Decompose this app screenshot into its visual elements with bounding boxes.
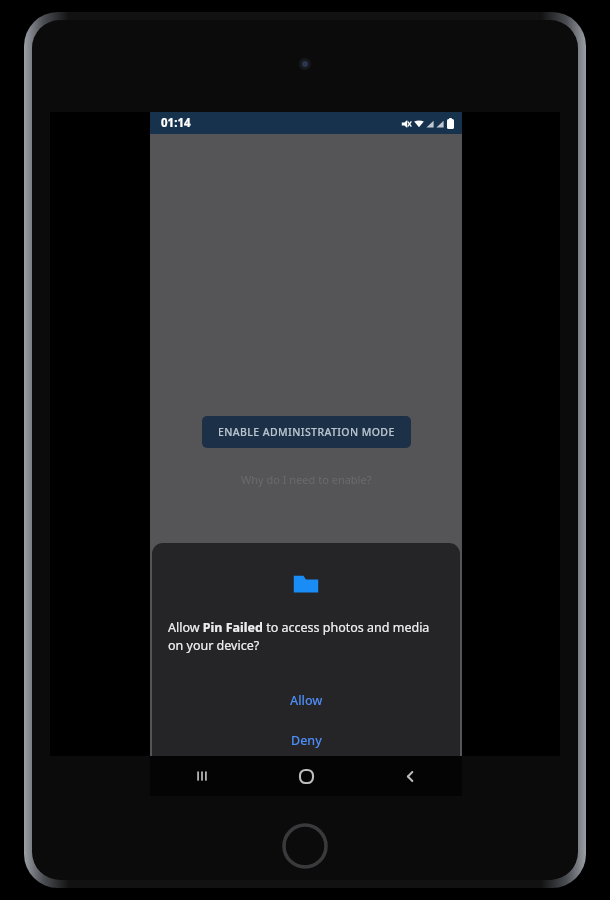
button[interactable]: Recent apps bbox=[150, 756, 254, 796]
staticText: Allow Pin Failed to access photos and me… bbox=[168, 619, 444, 654]
staticText: Why do I need to enable? bbox=[241, 472, 372, 487]
button[interactable]: Back bbox=[358, 756, 462, 796]
staticText: Allow bbox=[290, 692, 323, 709]
staticText: Deny bbox=[291, 732, 322, 749]
button[interactable]: Why do I need to enable? bbox=[237, 468, 376, 491]
staticText: 01:14 bbox=[161, 115, 191, 131]
button[interactable]: Home bbox=[150, 722, 306, 756]
button[interactable]: ENABLE ADMINISTRATION MODE bbox=[202, 416, 411, 448]
button[interactable]: Allow bbox=[152, 680, 460, 720]
staticText: ENABLE ADMINISTRATION MODE bbox=[218, 425, 395, 439]
button[interactable]: Deny bbox=[152, 720, 460, 760]
button[interactable]: Alerts bbox=[306, 722, 462, 756]
button[interactable]: Home bbox=[254, 756, 358, 796]
